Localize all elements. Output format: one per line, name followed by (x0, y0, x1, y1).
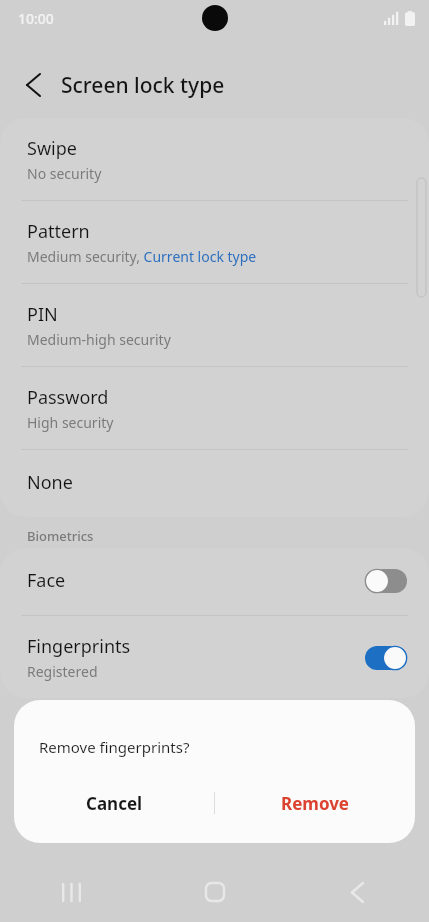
staticText: Biometrics (27, 527, 94, 545)
staticText: Remove fingerprints? (39, 737, 190, 757)
staticText: 10:00 (18, 9, 54, 28)
button[interactable]: Back (16, 68, 50, 102)
button[interactable]: Swipe (0, 118, 429, 200)
button[interactable]: Pattern (0, 201, 429, 283)
button[interactable]: Off (365, 569, 407, 593)
staticText: Fingerprints (27, 634, 131, 659)
staticText: None (27, 470, 73, 495)
button[interactable]: Cancel (14, 780, 214, 826)
staticText: Screen lock type (61, 71, 225, 100)
staticText: Registered (27, 662, 98, 681)
button[interactable]: Home (143, 862, 286, 922)
staticText: Password (27, 385, 109, 410)
button[interactable]: Fingerprints (0, 616, 429, 698)
staticText: Face (27, 568, 66, 593)
button[interactable]: Remove (215, 780, 415, 826)
button[interactable]: None (0, 450, 429, 517)
staticText: No security (27, 164, 102, 183)
button[interactable]: PIN (0, 284, 429, 366)
staticText: PIN (27, 302, 58, 327)
staticText: Swipe (27, 136, 77, 161)
staticText: Remove (281, 792, 350, 815)
staticText: High security (27, 413, 114, 432)
staticText: Pattern (27, 219, 90, 244)
staticText: Medium security, Current lock type (27, 247, 257, 266)
button[interactable]: On (365, 646, 407, 670)
button[interactable]: Face (0, 548, 429, 615)
staticText: Medium-high security (27, 330, 171, 349)
button[interactable]: Password (0, 367, 429, 449)
staticText: Cancel (86, 792, 143, 815)
